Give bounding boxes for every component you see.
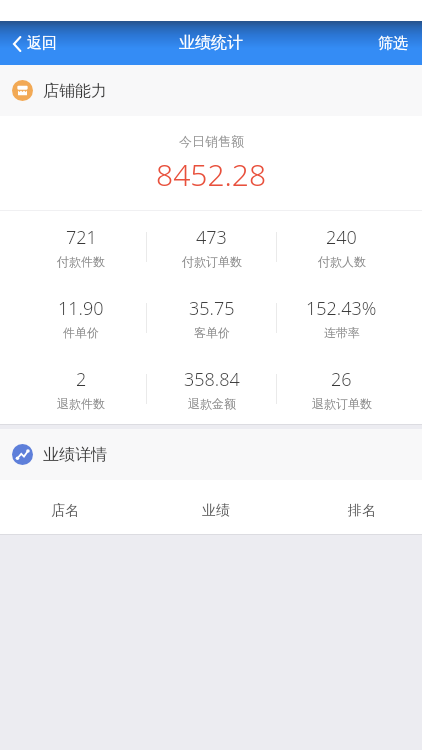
staticText: 152.43% — [306, 296, 377, 321]
staticText: 721 — [66, 225, 97, 250]
staticText: 排名 — [348, 502, 376, 520]
staticText: 240 — [326, 225, 357, 250]
staticText: 11.90 — [58, 296, 104, 321]
staticText: 返回 — [27, 34, 57, 53]
staticText: 付款人数 — [318, 254, 366, 269]
staticText: 连带率 — [324, 325, 360, 340]
button[interactable]: 筛选 — [364, 24, 422, 63]
staticText: 473 — [196, 225, 227, 250]
staticText: 店铺能力 — [43, 81, 107, 101]
staticText: 店名 — [51, 502, 79, 520]
staticText: 8452.28 — [156, 154, 267, 195]
staticText: 退款件数 — [57, 396, 105, 411]
staticText: 35.75 — [189, 296, 235, 321]
staticText: 付款订单数 — [182, 254, 242, 269]
button[interactable]: 返回 — [0, 26, 71, 61]
staticText: 客单价 — [194, 325, 230, 340]
staticText: 件单价 — [63, 325, 99, 340]
staticText: 退款金额 — [188, 396, 236, 411]
staticText: 付款件数 — [57, 254, 105, 269]
staticText: 筛选 — [378, 34, 408, 53]
staticText: 358.84 — [184, 367, 240, 392]
staticText: 2 — [76, 367, 87, 392]
button[interactable]: 店铺能力 — [0, 65, 422, 116]
staticText: 业绩 — [202, 502, 230, 520]
staticText: 今日销售额 — [179, 133, 244, 149]
staticText: 业绩统计 — [179, 33, 243, 53]
button[interactable]: 业绩详情 — [0, 429, 422, 480]
staticText: 26 — [331, 367, 352, 392]
staticText: 退款订单数 — [312, 396, 372, 411]
staticText: 业绩详情 — [43, 445, 107, 465]
